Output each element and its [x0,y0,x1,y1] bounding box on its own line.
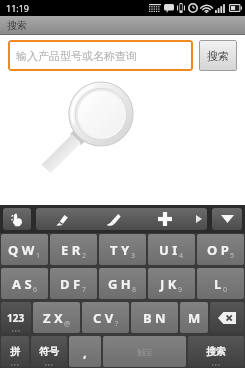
staticText: 3 [131,251,136,261]
staticText: Q W [8,241,35,259]
staticText: , [83,343,87,361]
staticText: 输入产品型号或名称查询 [16,49,137,63]
staticText: 搜索 [207,49,229,63]
button[interactable]: M [180,302,208,333]
staticText: 拼 [10,345,20,358]
button[interactable]: 输入产品型号或名称查询 [8,40,193,71]
button[interactable]: Pen [36,208,87,230]
button[interactable]: 拼 [1,336,29,367]
staticText: 搜索 [206,345,226,358]
staticText: ? [115,319,119,329]
button[interactable]: U I [148,234,195,265]
staticText: A S [12,275,32,293]
button[interactable]: Backspace [210,302,244,333]
staticText: @ [64,319,71,329]
staticText: T Y [110,241,130,259]
button[interactable]: 搜索 [188,336,244,367]
staticText: B N [143,309,166,327]
button[interactable]: J K [148,268,195,299]
staticText: 触宝 [137,347,153,357]
staticText: O P [207,241,229,259]
staticText: E R [61,241,81,259]
button[interactable]: Add [139,208,191,230]
button[interactable]: L [197,268,244,299]
button[interactable]: O P [197,234,244,265]
button[interactable]: , [69,336,101,367]
button[interactable]: Hide keyboard [212,208,242,230]
button[interactable]: E R [50,234,97,265]
staticText: 7 [82,285,87,295]
button[interactable]: 123 [1,302,31,333]
staticText: 123 [7,311,25,325]
staticText: 1 [36,251,41,261]
button[interactable]: 符号 [31,336,67,367]
staticText: C V [93,309,114,327]
button[interactable]: A S [1,268,48,299]
staticText: 8 [132,285,137,295]
button[interactable]: More [191,208,207,230]
button[interactable]: 搜索 [199,40,237,71]
staticText: 6 [33,285,38,295]
staticText: G H [108,275,131,293]
staticText: 符号 [39,345,59,358]
button[interactable]: G H [99,268,146,299]
staticText: 0 [223,285,228,295]
staticText: 2 [82,251,87,261]
staticText: D F [60,275,81,293]
staticText: 搜索 [7,19,27,32]
button[interactable]: Space [103,336,186,367]
staticText: J K [160,275,177,293]
staticText: 9 [178,285,183,295]
staticText: 4 [179,251,184,261]
button[interactable]: C V [82,302,129,333]
staticText: 11:19 [6,2,30,14]
button[interactable]: Q W [1,234,48,265]
staticText: U I [159,241,178,259]
button[interactable]: Brush [87,208,139,230]
button[interactable]: Z X [33,302,80,333]
button[interactable]: D F [50,268,97,299]
staticText: M [188,309,201,327]
button[interactable]: T Y [99,234,146,265]
staticText: L [214,275,222,293]
button[interactable]: Handwriting input [3,208,31,230]
staticText: Z X [43,309,63,327]
button[interactable]: B N [131,302,178,333]
staticText: 5 [230,251,235,261]
